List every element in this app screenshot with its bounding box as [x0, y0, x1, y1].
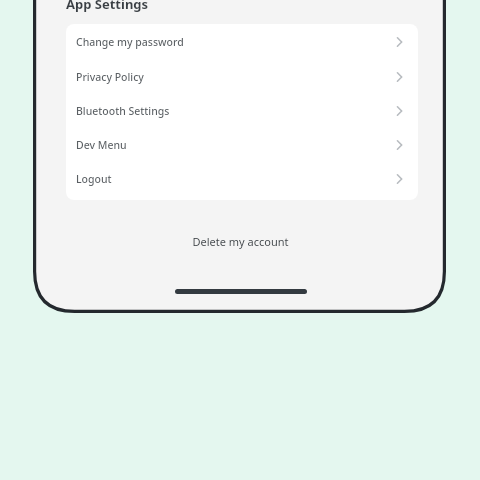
other: Logout	[392, 172, 406, 186]
staticText: Logout	[76, 172, 392, 186]
button[interactable]: Change my password	[66, 24, 418, 60]
staticText: Privacy Policy	[76, 70, 392, 84]
other: Dev Menu	[392, 138, 406, 152]
button[interactable]: Logout	[66, 162, 418, 196]
staticText: Bluetooth Settings	[76, 104, 392, 118]
other: Change my password	[392, 35, 406, 49]
staticText: Delete my account	[192, 234, 289, 249]
staticText: App Settings	[66, 0, 149, 13]
button[interactable]: Delete my account	[37, 232, 443, 250]
button[interactable]: Privacy Policy	[66, 60, 418, 94]
staticText: Dev Menu	[76, 138, 392, 152]
other: Bluetooth Settings	[392, 104, 406, 118]
button[interactable]: Dev Menu	[66, 128, 418, 162]
other: Privacy Policy	[392, 70, 406, 84]
button[interactable]: Bluetooth Settings	[66, 94, 418, 128]
staticText: Change my password	[76, 35, 392, 49]
